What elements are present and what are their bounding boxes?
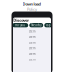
staticText: Item — [29, 41, 35, 44]
staticText: Item — [29, 46, 35, 50]
staticText: Policy — [27, 6, 37, 12]
button[interactable]: Nearby — [29, 23, 43, 28]
staticText: Top — [46, 23, 51, 27]
staticText: Item — [29, 30, 35, 33]
staticText: Nearby — [31, 23, 41, 27]
button[interactable]: For you — [12, 23, 28, 28]
staticText: Item — [29, 58, 35, 61]
staticText: For you — [15, 23, 25, 27]
staticText: Item — [29, 35, 35, 39]
staticText: Download — [22, 1, 41, 6]
staticText: Discover — [13, 18, 29, 23]
staticText: Item — [29, 52, 35, 56]
button[interactable]: Top — [44, 23, 52, 28]
